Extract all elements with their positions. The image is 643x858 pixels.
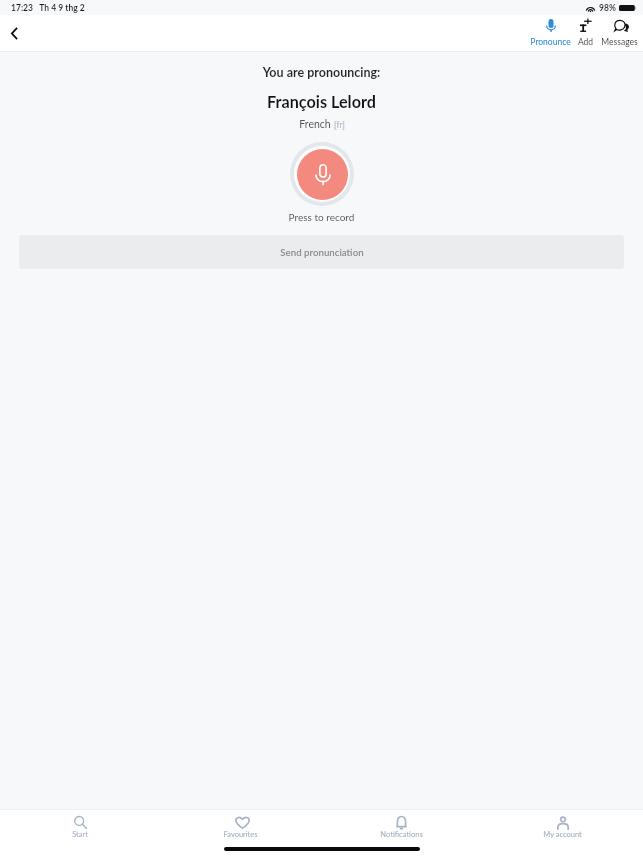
staticText: 17:23 xyxy=(11,3,33,13)
button[interactable]: Pronounce xyxy=(528,15,573,49)
staticText: French xyxy=(299,118,331,131)
staticText: My account xyxy=(482,830,643,839)
button[interactable]: My account xyxy=(482,810,643,844)
staticText: Press to record xyxy=(0,211,643,223)
button[interactable]: Start xyxy=(0,810,160,844)
button[interactable]: Press to record xyxy=(290,142,354,206)
staticText: 98% xyxy=(599,3,616,13)
staticText: You are pronouncing: xyxy=(0,65,643,80)
staticText: Messages xyxy=(598,37,641,47)
button[interactable]: Favourites xyxy=(160,810,321,844)
staticText: Favourites xyxy=(160,830,321,839)
button[interactable]: Back xyxy=(0,18,29,48)
staticText: Notifications xyxy=(321,830,482,839)
staticText: [fr] xyxy=(334,120,345,130)
staticText: Th 4 9 thg 2 xyxy=(39,3,85,13)
staticText: Add xyxy=(575,37,596,47)
button[interactable]: Messages xyxy=(598,15,641,49)
staticText: Pronounce xyxy=(528,37,573,47)
button[interactable]: Send pronunciation xyxy=(19,235,624,269)
staticText: François Lelord xyxy=(0,92,643,111)
button[interactable]: Add xyxy=(575,15,596,49)
staticText: Send pronunciation xyxy=(280,246,364,258)
button[interactable]: Notifications xyxy=(321,810,482,844)
staticText: Start xyxy=(0,830,160,839)
